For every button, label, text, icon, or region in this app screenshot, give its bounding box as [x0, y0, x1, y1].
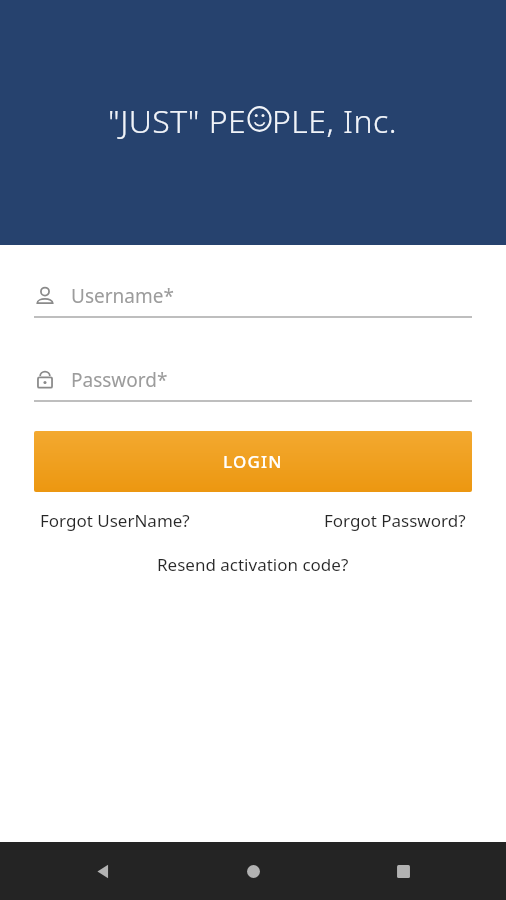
button[interactable]: Forgot UserName? — [40, 509, 190, 532]
staticText: "JUST" PE — [108, 99, 247, 139]
button[interactable]: LOGIN — [34, 431, 472, 492]
staticText: LOGIN — [223, 450, 283, 473]
button[interactable]: Home — [178, 842, 328, 900]
button[interactable]: Back — [28, 842, 178, 900]
button[interactable]: Forgot Password? — [324, 509, 466, 532]
button[interactable]: Recent apps — [328, 842, 478, 900]
staticText: Forgot UserName? — [40, 509, 190, 532]
button[interactable]: Username* — [34, 280, 472, 318]
staticText: PLE, Inc. — [272, 99, 398, 139]
staticText: Forgot Password? — [324, 509, 466, 532]
button[interactable]: Password* — [34, 364, 472, 402]
staticText: Username* — [71, 283, 174, 309]
button[interactable]: Resend activation code? — [157, 553, 349, 576]
staticText: Resend activation code? — [157, 553, 349, 576]
staticText: Password* — [71, 367, 168, 393]
